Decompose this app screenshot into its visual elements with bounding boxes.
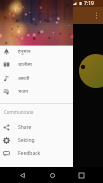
button[interactable]: Feedback [0, 147, 73, 159]
button[interactable]: हनुमान [0, 45, 73, 57]
button[interactable]: More options [90, 9, 102, 21]
button[interactable]: Back [15, 168, 29, 182]
staticText: हनुमान [18, 48, 31, 55]
staticText: आरती [18, 75, 30, 82]
staticText: भजन [18, 88, 29, 95]
staticText: चालीसा [18, 61, 32, 68]
staticText: Setting [18, 137, 35, 144]
button[interactable]: Recent apps [74, 168, 88, 182]
staticText: Communicate [4, 109, 34, 115]
button[interactable]: Share [0, 121, 73, 133]
staticText: 7:19 [84, 0, 94, 7]
staticText: Feedback [18, 150, 41, 157]
button[interactable]: Home [45, 168, 59, 182]
button[interactable]: आरती [0, 72, 73, 84]
staticText: Share [18, 124, 32, 131]
button[interactable]: चालीसा [0, 58, 73, 70]
button[interactable]: Setting [0, 134, 73, 146]
button[interactable]: भजन [0, 85, 73, 97]
